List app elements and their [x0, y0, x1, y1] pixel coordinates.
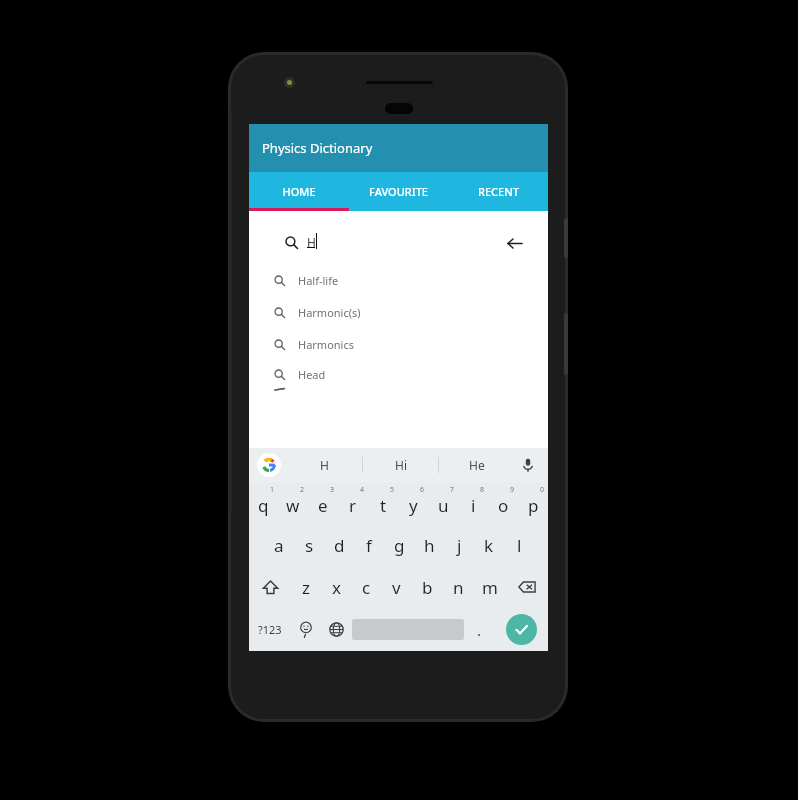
button[interactable]: y: [398, 482, 428, 524]
staticText: o: [498, 494, 509, 517]
button[interactable]: Change language: [321, 608, 352, 651]
button[interactable]: d: [324, 524, 354, 566]
button[interactable]: Emoji: [290, 608, 321, 651]
button[interactable]: f: [354, 524, 384, 566]
staticText: k: [484, 534, 494, 557]
button[interactable]: a: [263, 524, 294, 566]
staticText: i: [471, 494, 476, 517]
button[interactable]: Head: [262, 360, 534, 389]
staticText: h: [424, 534, 435, 557]
staticText: r: [349, 494, 357, 517]
button[interactable]: Shift: [249, 566, 291, 608]
button[interactable]: j: [444, 524, 474, 566]
button[interactable]: Backspace: [505, 566, 548, 608]
staticText: 7: [450, 485, 455, 495]
staticText: .: [477, 620, 482, 640]
staticText: H: [307, 234, 316, 250]
button[interactable]: Harmonics: [262, 328, 534, 360]
button[interactable]: t: [368, 482, 398, 524]
staticText: q: [258, 494, 269, 517]
staticText: s: [305, 534, 314, 557]
button[interactable]: b: [412, 566, 443, 608]
staticText: x: [332, 576, 341, 599]
button[interactable]: r: [338, 482, 368, 524]
staticText: e: [318, 494, 328, 517]
staticText: m: [482, 576, 498, 599]
button[interactable]: He: [439, 448, 514, 482]
staticText: l: [517, 534, 522, 557]
staticText: 2: [300, 485, 305, 495]
button[interactable]: H: [265, 220, 532, 265]
button[interactable]: x: [321, 566, 351, 608]
staticText: Head: [298, 367, 326, 382]
button[interactable]: i: [458, 482, 488, 524]
button[interactable]: Back: [503, 232, 525, 254]
button[interactable]: q: [249, 482, 278, 524]
staticText: p: [528, 494, 539, 517]
button[interactable]: Voice input: [518, 455, 538, 475]
button[interactable]: m: [474, 566, 505, 608]
staticText: g: [394, 534, 405, 557]
button[interactable]: Harmonic(s): [262, 296, 534, 328]
staticText: Harmonic(s): [298, 305, 361, 320]
staticText: f: [366, 534, 372, 557]
button[interactable]: w: [278, 482, 308, 524]
staticText: d: [334, 534, 345, 557]
button[interactable]: Google: [257, 453, 281, 477]
staticText: HOME: [282, 184, 316, 199]
staticText: a: [274, 534, 284, 557]
staticText: z: [302, 576, 310, 599]
staticText: 6: [420, 485, 425, 495]
staticText: n: [453, 576, 464, 599]
button[interactable]: v: [381, 566, 412, 608]
staticText: 3: [330, 485, 335, 495]
button[interactable]: .: [464, 608, 495, 651]
button[interactable]: Physics Dictionary: [249, 124, 548, 172]
staticText: H: [320, 457, 329, 473]
button[interactable]: h: [414, 524, 444, 566]
button[interactable]: Enter: [506, 614, 537, 645]
staticText: y: [409, 494, 418, 517]
staticText: Half-life: [298, 273, 339, 288]
button[interactable]: FAVOURITE: [348, 172, 448, 211]
button[interactable]: e: [308, 482, 338, 524]
staticText: Hi: [395, 457, 407, 473]
button[interactable]: H: [287, 448, 362, 482]
staticText: b: [422, 576, 433, 599]
button[interactable]: n: [443, 566, 474, 608]
staticText: 9: [510, 485, 515, 495]
staticText: ?123: [258, 622, 282, 637]
staticText: c: [362, 576, 371, 599]
staticText: 5: [390, 485, 395, 495]
staticText: w: [286, 494, 300, 517]
staticText: Physics Dictionary: [262, 139, 373, 157]
button[interactable]: RECENT: [448, 172, 548, 211]
staticText: j: [457, 534, 462, 557]
button[interactable]: c: [351, 566, 381, 608]
staticText: Harmonics: [298, 337, 354, 352]
button[interactable]: s: [294, 524, 324, 566]
staticText: u: [438, 494, 449, 517]
staticText: RECENT: [478, 184, 519, 199]
staticText: v: [392, 576, 401, 599]
staticText: He: [469, 457, 485, 473]
button[interactable]: Half-life: [262, 264, 534, 296]
staticText: 8: [480, 485, 485, 495]
button[interactable]: k: [474, 524, 504, 566]
button[interactable]: HOME: [249, 172, 348, 211]
button[interactable]: p: [518, 482, 548, 524]
button[interactable]: g: [384, 524, 414, 566]
staticText: 0: [540, 485, 545, 495]
button[interactable]: Hi: [363, 448, 438, 482]
button[interactable]: z: [291, 566, 321, 608]
staticText: FAVOURITE: [369, 184, 428, 199]
staticText: 4: [360, 485, 365, 495]
button[interactable]: l: [504, 524, 534, 566]
staticText: t: [380, 494, 387, 517]
button[interactable]: o: [488, 482, 518, 524]
button[interactable]: ?123: [249, 608, 290, 651]
staticText: 1: [270, 485, 275, 495]
button[interactable]: u: [428, 482, 458, 524]
